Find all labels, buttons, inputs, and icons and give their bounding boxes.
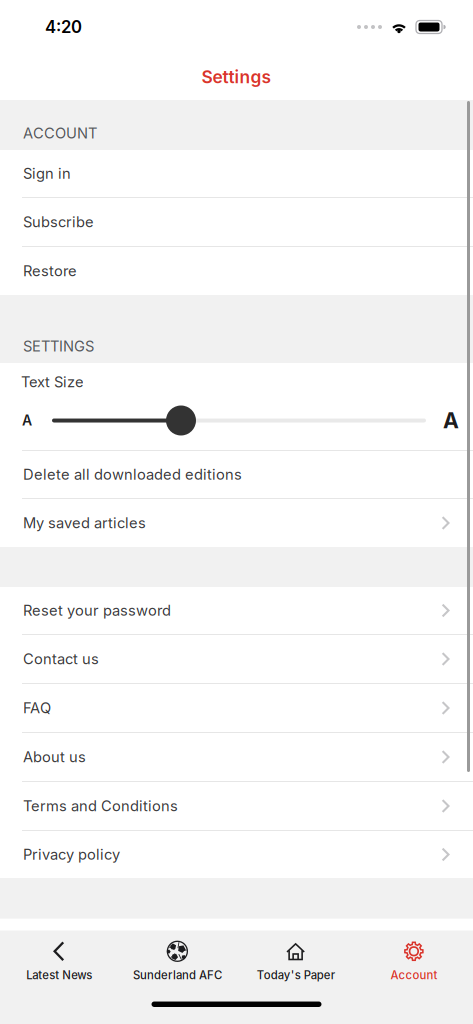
button[interactable]: Subscribe: [0, 198, 473, 246]
button[interactable]: About us: [0, 733, 473, 781]
staticText: FAQ: [23, 699, 51, 717]
button[interactable]: Latest News: [0, 931, 118, 990]
button[interactable]: Reset your password: [0, 587, 473, 634]
staticText: Subscribe: [23, 213, 94, 231]
staticText: Reset your password: [23, 602, 171, 619]
staticText: Sunderland AFC: [133, 968, 222, 982]
button[interactable]: Contact us: [0, 635, 473, 683]
button[interactable]: Terms and Conditions: [0, 782, 473, 830]
staticText: A: [22, 412, 32, 429]
staticText: Terms and Conditions: [23, 797, 178, 815]
staticText: Sign in: [23, 165, 71, 182]
staticText: 4:20: [45, 17, 82, 37]
staticText: Privacy policy: [23, 846, 120, 863]
button[interactable]: Privacy policy: [0, 831, 473, 878]
staticText: My saved articles: [23, 514, 146, 532]
staticText: A: [443, 408, 459, 433]
staticText: Settings: [201, 66, 271, 87]
button[interactable]: My saved articles: [0, 499, 473, 547]
staticText: Today's Paper: [257, 968, 335, 982]
staticText: SETTINGS: [23, 337, 94, 355]
staticText: Account: [390, 968, 437, 982]
staticText: Text Size: [21, 373, 84, 391]
staticText: Restore: [23, 262, 77, 280]
staticText: ACCOUNT: [23, 124, 97, 142]
button[interactable]: Sign in: [0, 150, 473, 197]
staticText: Delete all downloaded editions: [23, 466, 242, 483]
button[interactable]: Today's Paper: [236, 931, 355, 990]
button[interactable]: Account: [355, 931, 473, 990]
button[interactable]: Sunderland AFC: [118, 931, 236, 990]
button[interactable]: FAQ: [0, 684, 473, 732]
button[interactable]: Settings: [0, 54, 473, 100]
button[interactable]: Delete all downloaded editions: [0, 451, 473, 498]
button[interactable]: Restore: [0, 247, 473, 295]
staticText: Latest News: [26, 968, 92, 982]
staticText: About us: [23, 748, 86, 766]
staticText: Contact us: [23, 650, 99, 668]
